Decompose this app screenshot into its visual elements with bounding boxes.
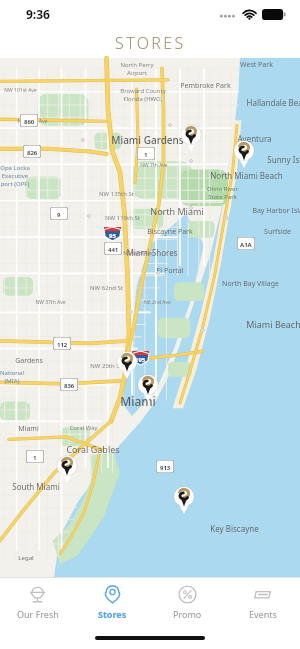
staticText: Gardens: [15, 356, 43, 366]
staticText: 9: [57, 211, 61, 219]
staticText: Miami Beach: [246, 318, 300, 330]
staticText: North Miami: [150, 205, 204, 217]
staticText: North Bay Village: [222, 279, 279, 289]
staticText: Promo: [173, 608, 202, 620]
button[interactable]: Store location: [116, 351, 138, 379]
button[interactable]: Our Fresh: [0, 578, 75, 626]
staticText: 1: [33, 454, 37, 462]
staticText: Key Biscayne: [210, 523, 259, 534]
staticText: 112: [57, 341, 68, 349]
staticText: Bay Harbor Island: [252, 206, 300, 216]
staticText: Miami: [120, 393, 156, 409]
staticText: A1A: [240, 241, 252, 249]
staticText: Opa Locka Executive port (OPF): [0, 164, 30, 188]
staticText: Surfside: [264, 227, 291, 237]
staticText: NW 37th Ave: [35, 299, 66, 306]
staticText: Aventura: [237, 133, 272, 144]
staticText: Broward County Florida (HWO): [120, 87, 166, 103]
staticText: 1: [144, 151, 148, 159]
button[interactable]: Stores: [75, 578, 150, 626]
staticText: Legal: [18, 554, 34, 562]
staticText: NW 101st Ave: [4, 87, 37, 94]
staticText: Our Fresh: [17, 608, 59, 620]
staticText: Biscayne Park: [147, 227, 193, 237]
staticText: 826: [27, 149, 38, 157]
staticText: Miami: [18, 424, 39, 434]
staticText: Events: [249, 608, 277, 620]
staticText: NW 7th Ave: [140, 162, 168, 169]
button[interactable]: Events: [225, 578, 300, 626]
button[interactable]: Store location: [173, 486, 195, 514]
staticText: Coral Way: [69, 424, 98, 432]
staticText: 441: [108, 246, 119, 254]
button[interactable]: Store location: [137, 374, 159, 402]
staticText: Sunny Isles: [267, 154, 300, 165]
staticText: El Portal: [156, 266, 184, 276]
staticText: STORES: [115, 32, 186, 54]
staticText: NW 47th Ave: [17, 118, 48, 125]
staticText: N Miami Ave: [123, 250, 153, 257]
button[interactable]: Promo: [150, 578, 225, 626]
staticText: Pembroke Park: [180, 81, 231, 91]
staticText: Miami Shores: [126, 247, 178, 258]
staticText: National (MIA): [0, 369, 24, 385]
staticText: South Miami: [12, 481, 60, 492]
staticText: NW 62nd St: [90, 284, 123, 292]
staticText: NW 119th St: [105, 214, 140, 222]
staticText: 913: [160, 464, 171, 472]
staticText: 860: [24, 118, 35, 126]
staticText: Stores: [98, 608, 127, 620]
button[interactable]: Store location: [56, 455, 78, 483]
staticText: 95: [109, 232, 116, 240]
button[interactable]: Store location: [180, 124, 202, 152]
staticText: 9:36: [26, 6, 50, 22]
staticText: West Park: [240, 60, 273, 70]
staticText: Hallandale Beach: [246, 97, 300, 108]
staticText: Coral Gables: [66, 443, 120, 455]
button[interactable]: Store location: [233, 140, 255, 168]
staticText: NW 135th St: [99, 190, 134, 198]
staticText: 836: [64, 382, 75, 390]
staticText: NW 20th St: [90, 362, 122, 370]
staticText: North Perry Airport: [120, 61, 154, 77]
staticText: Oleta River State Park: [207, 185, 238, 201]
staticText: North Miami Beach: [210, 170, 283, 181]
staticText: NE 2nd Ave: [144, 299, 171, 306]
staticText: 195: [135, 356, 146, 364]
staticText: Miami Gardens: [111, 133, 184, 147]
